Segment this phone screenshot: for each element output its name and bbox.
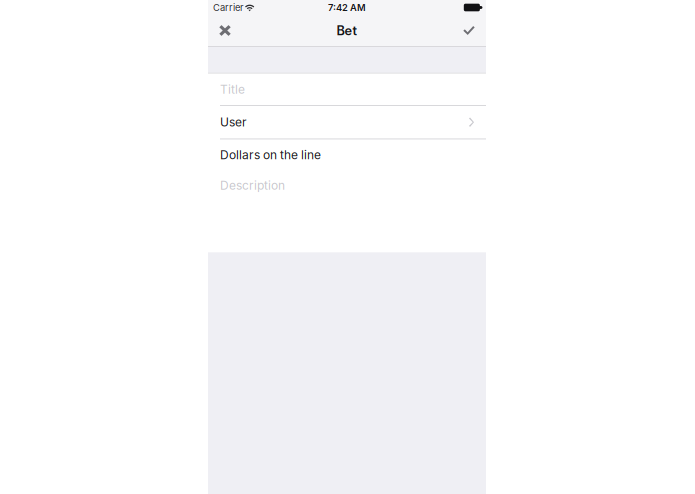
button[interactable]: Close — [208, 15, 242, 46]
staticText: Description — [220, 178, 285, 192]
staticText: Dollars on the line — [220, 147, 321, 162]
staticText: 7:42 AM — [328, 2, 366, 13]
staticText: Bet — [336, 23, 357, 38]
staticText: User — [220, 115, 247, 129]
button[interactable]: Save — [452, 15, 486, 46]
staticText: Carrier — [213, 2, 244, 13]
button[interactable]: User — [208, 106, 486, 139]
staticText: Title — [220, 82, 245, 97]
